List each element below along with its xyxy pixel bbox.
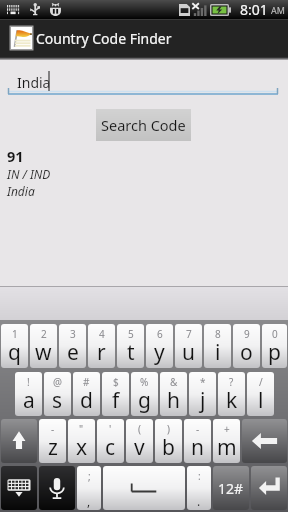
staticText: India (17, 73, 51, 92)
staticText: + (224, 422, 230, 436)
staticText: c (105, 433, 116, 462)
button[interactable]: * (189, 372, 216, 416)
staticText: b (162, 433, 175, 462)
staticText: ? (229, 375, 234, 389)
staticText: India (7, 183, 35, 199)
staticText: v (134, 433, 145, 462)
staticText: % (140, 375, 149, 389)
button[interactable]: Shift (1, 419, 37, 463)
staticText: ' (109, 422, 112, 436)
button[interactable]: 1 (1, 324, 28, 368)
button[interactable]: Space (103, 466, 185, 510)
staticText: d (80, 386, 93, 415)
staticText: e (67, 338, 79, 367)
button[interactable]: % (131, 372, 158, 416)
button[interactable]: Voice input (39, 466, 75, 510)
staticText: . (197, 493, 201, 509)
staticText: @ (53, 375, 62, 389)
staticText: AM (271, 4, 285, 16)
button[interactable]: - (184, 419, 211, 463)
button[interactable]: Enter (251, 466, 287, 510)
staticText: : (198, 469, 201, 483)
button[interactable]: # (73, 372, 100, 416)
staticText: , (87, 493, 91, 509)
staticText: 2 (41, 327, 47, 341)
button[interactable]: 8 (204, 324, 231, 368)
button[interactable]: ! (15, 372, 42, 416)
staticText: l (258, 386, 264, 415)
button[interactable]: 9 (233, 324, 260, 368)
staticText: ) (167, 422, 170, 436)
staticText: 3 (70, 327, 76, 341)
staticText: & (170, 375, 178, 389)
staticText: ; (88, 469, 91, 483)
button[interactable]: 0 (262, 324, 287, 368)
staticText: 8:01 (240, 0, 268, 19)
staticText: IN / IND (7, 166, 51, 182)
staticText: 91 (7, 146, 24, 166)
button[interactable]: 5 (117, 324, 144, 368)
staticText: n (191, 433, 204, 462)
button[interactable]: Search Code (96, 109, 191, 141)
staticText: i (215, 338, 221, 367)
staticText: / (259, 375, 263, 389)
staticText: r (97, 338, 106, 367)
staticText: 4 (99, 327, 105, 341)
staticText: ( (138, 422, 141, 436)
staticText: w (35, 338, 52, 367)
button[interactable]: + (213, 419, 240, 463)
staticText: z (48, 433, 58, 462)
button[interactable]: ) (155, 419, 182, 463)
button[interactable]: @ (44, 372, 71, 416)
staticText: f (112, 386, 120, 415)
button[interactable]: 4 (88, 324, 115, 368)
button[interactable]: $ (102, 372, 129, 416)
staticText: a (23, 386, 35, 415)
staticText: y (154, 338, 165, 367)
staticText: 7 (186, 327, 192, 341)
button[interactable]: ? (218, 372, 245, 416)
staticText: x (76, 433, 88, 462)
staticText: g (138, 386, 151, 415)
button[interactable]: ; (77, 466, 101, 510)
staticText: * (200, 375, 206, 389)
button[interactable]: 2 (30, 324, 57, 368)
staticText: u (182, 338, 195, 367)
staticText: 5 (128, 327, 134, 341)
staticText: k (226, 386, 238, 415)
staticText: h (167, 386, 180, 415)
staticText: m (217, 433, 237, 462)
staticText: p (268, 338, 281, 367)
staticText: " (79, 422, 84, 436)
staticText: j (200, 386, 206, 415)
staticText: q (8, 338, 21, 367)
button[interactable]: / (247, 372, 274, 416)
staticText: t (127, 338, 135, 367)
staticText: $ (113, 375, 119, 389)
button[interactable]: 6 (146, 324, 173, 368)
button[interactable]: & (160, 372, 187, 416)
button[interactable]: 3 (59, 324, 86, 368)
staticText: o (240, 338, 253, 367)
staticText: # (83, 375, 90, 389)
button[interactable]: 7 (175, 324, 202, 368)
staticText: 8 (215, 327, 221, 341)
button[interactable]: " (68, 419, 95, 463)
button[interactable]: Switch keyboard (1, 466, 37, 510)
staticText: Search Code (101, 115, 186, 135)
staticText: 1 (12, 327, 18, 341)
button[interactable]: Backspace (242, 419, 287, 463)
staticText: 9 (244, 327, 250, 341)
button[interactable]: - (39, 419, 66, 463)
staticText: Country Code Finder (36, 29, 172, 48)
button[interactable]: ' (97, 419, 124, 463)
button[interactable]: : (187, 466, 211, 510)
button[interactable]: ( (126, 419, 153, 463)
staticText: ! (27, 375, 30, 389)
staticText: - (196, 422, 200, 436)
staticText: 0 (272, 327, 278, 341)
staticText: 6 (157, 327, 163, 341)
button[interactable]: 12# (213, 466, 249, 510)
staticText: s (52, 386, 63, 415)
staticText: - (51, 422, 55, 436)
